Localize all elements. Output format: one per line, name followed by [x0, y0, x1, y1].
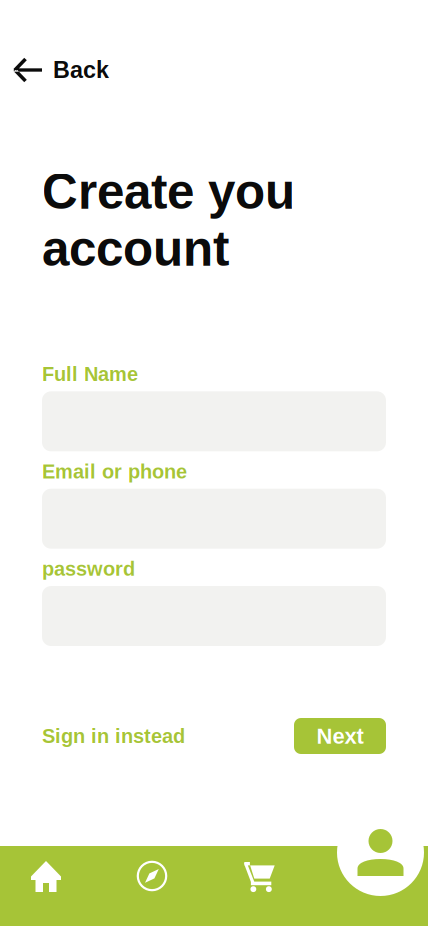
button[interactable]: Cart — [213, 861, 305, 907]
staticText: Back — [53, 57, 109, 83]
button[interactable]: Back — [13, 46, 153, 94]
staticText: Create you — [42, 164, 295, 219]
button[interactable]: Explore — [106, 861, 198, 907]
staticText: Full Name — [42, 363, 138, 385]
button[interactable]: Next — [294, 718, 386, 754]
staticText: account — [42, 221, 229, 276]
button[interactable]: Profile — [337, 809, 424, 896]
staticText: Email or phone — [42, 460, 187, 483]
button[interactable]: Home — [0, 861, 92, 907]
staticText: Sign in instead — [42, 725, 185, 747]
staticText: password — [42, 558, 135, 580]
staticText: Next — [316, 724, 363, 748]
button[interactable]: Sign in instead — [42, 718, 185, 754]
